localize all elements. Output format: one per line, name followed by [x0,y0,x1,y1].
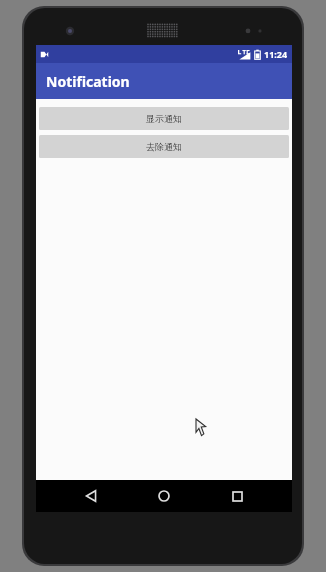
staticText: 显示通知 [146,113,182,124]
staticText: 去除通知 [146,141,182,152]
button[interactable]: 显示通知 [39,107,289,130]
button[interactable]: 去除通知 [39,135,289,158]
button[interactable]: Back [73,480,109,512]
button[interactable]: Home [146,480,182,512]
staticText: 11:24 [264,48,288,60]
button[interactable]: Recent apps [219,480,255,512]
staticText: Notification [46,72,130,91]
